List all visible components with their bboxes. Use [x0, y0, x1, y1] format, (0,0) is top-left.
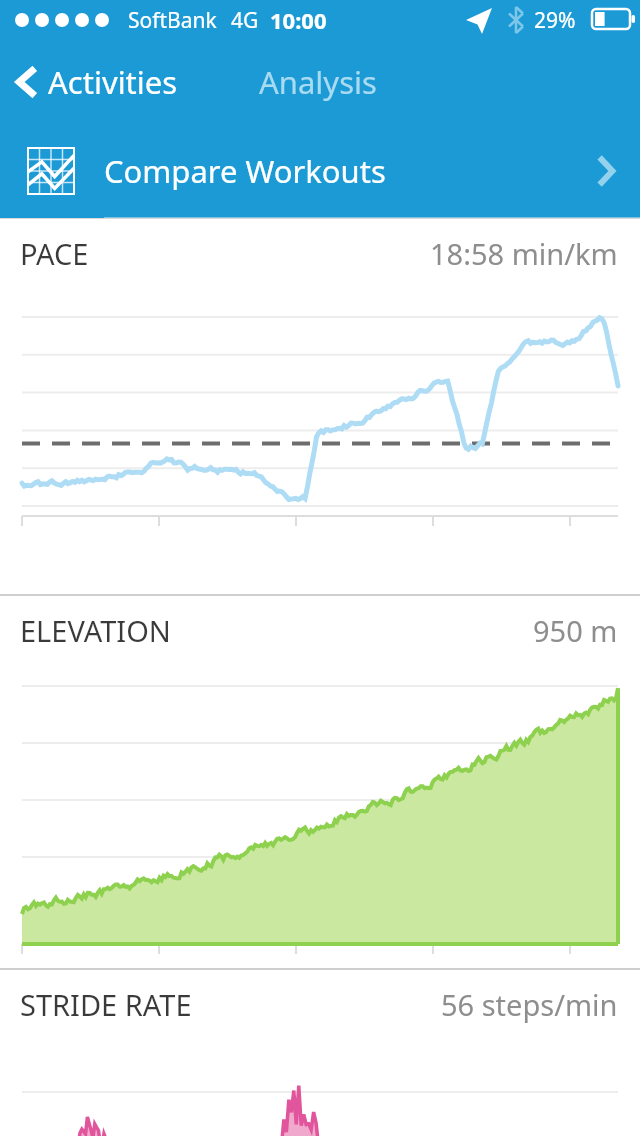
staticText: 10:00 — [270, 5, 327, 35]
staticText: 56 steps/min — [441, 985, 618, 1024]
staticText: PACE — [20, 234, 89, 273]
staticText: 18:58 min/km — [430, 234, 618, 273]
staticText: STRIDE RATE — [20, 985, 192, 1024]
staticText: 29% — [534, 6, 576, 35]
staticText: Compare Workouts — [104, 150, 386, 192]
staticText: SoftBank — [128, 6, 217, 35]
staticText: 4G — [231, 6, 259, 35]
button[interactable]: Activities — [14, 61, 178, 103]
other: Compare chart icon — [26, 146, 76, 196]
staticText: ELEVATION — [20, 611, 171, 650]
button[interactable]: Compare chart icon — [0, 123, 640, 218]
staticText: Activities — [48, 61, 178, 103]
staticText: 950 m — [533, 611, 618, 650]
button[interactable]: Analysis — [259, 61, 377, 103]
